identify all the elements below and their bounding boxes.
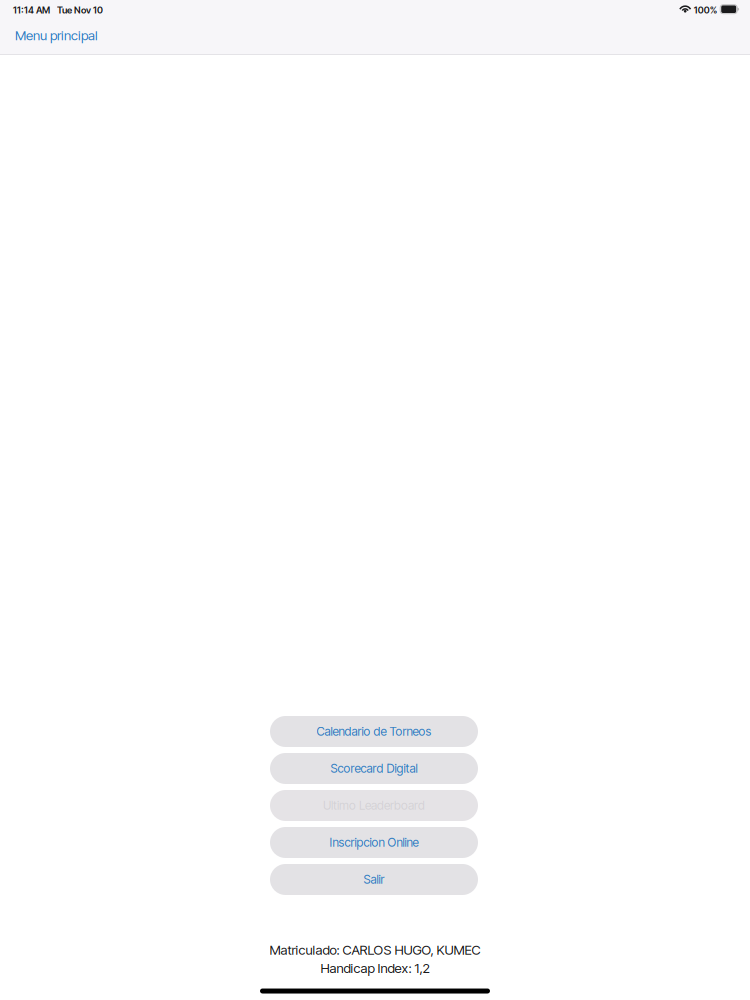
button[interactable]: Scorecard Digital	[270, 753, 478, 784]
button[interactable]: Calendario de Torneos	[270, 716, 478, 747]
staticText: Menu principal	[15, 27, 98, 43]
button[interactable]: Ultimo Leaderboard	[270, 790, 478, 821]
button[interactable]: Inscripcion Online	[270, 827, 478, 858]
staticText: Calendario de Torneos	[316, 724, 431, 739]
staticText: Handicap Index: 1,2	[320, 960, 429, 976]
staticText: Salir	[363, 872, 384, 887]
staticText: 11:14 AM	[13, 4, 50, 16]
button[interactable]: Menu principal	[15, 22, 119, 48]
staticText: Ultimo Leaderboard	[323, 798, 425, 813]
staticText: 100%	[694, 4, 718, 16]
staticText: Inscripcion Online	[329, 835, 418, 850]
staticText: Tue Nov 10	[57, 4, 103, 16]
button[interactable]: Salir	[270, 864, 478, 895]
staticText: Matriculado: CARLOS HUGO, KUMEC	[269, 942, 480, 958]
staticText: Scorecard Digital	[330, 761, 417, 776]
